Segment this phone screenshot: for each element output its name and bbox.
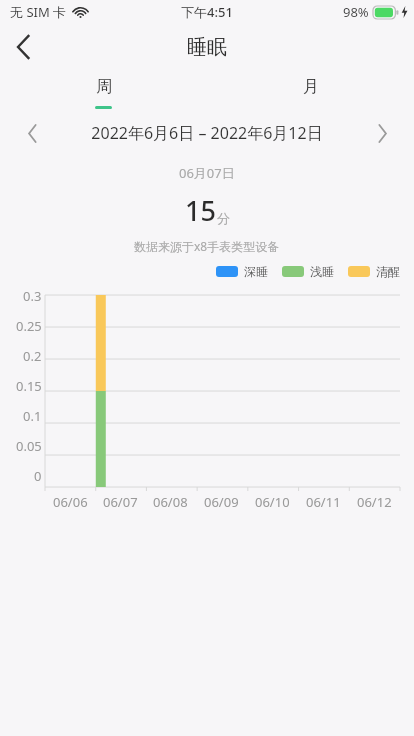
- button[interactable]: Back: [0, 24, 46, 70]
- staticText: 0.2: [23, 347, 42, 365]
- staticText: 06/12: [357, 493, 392, 511]
- staticText: 0.15: [16, 377, 42, 395]
- staticText: 06/08: [153, 493, 188, 511]
- staticText: 下午4:51: [181, 3, 233, 21]
- staticText: 0.25: [16, 317, 42, 335]
- staticText: 06/10: [255, 493, 290, 511]
- staticText: 深睡: [244, 264, 268, 279]
- staticText: 0.3: [23, 287, 42, 305]
- staticText: 06/06: [53, 493, 88, 511]
- staticText: 数据来源于x8手表类型设备: [134, 238, 280, 254]
- staticText: 06月07日: [179, 164, 235, 182]
- staticText: 06/07: [103, 493, 138, 511]
- staticText: 浅睡: [310, 264, 334, 279]
- staticText: 清醒: [376, 264, 400, 279]
- staticText: 98%: [343, 3, 369, 21]
- staticText: 月: [303, 77, 319, 97]
- button[interactable]: Next week: [362, 116, 402, 150]
- staticText: 无 SIM 卡: [10, 3, 67, 21]
- staticText: 06/11: [306, 493, 341, 511]
- staticText: 周: [96, 77, 112, 97]
- button[interactable]: 周: [0, 70, 207, 116]
- staticText: 0.05: [16, 437, 42, 455]
- staticText: 15: [185, 192, 216, 229]
- staticText: 分: [217, 210, 230, 226]
- button[interactable]: 月: [207, 70, 414, 116]
- staticText: 2022年6月6日 – 2022年6月12日: [52, 122, 362, 144]
- staticText: 睡眠: [187, 35, 227, 60]
- staticText: 06/09: [204, 493, 239, 511]
- button[interactable]: Previous week: [12, 116, 52, 150]
- staticText: 0.1: [23, 407, 42, 425]
- staticText: 0: [34, 467, 42, 485]
